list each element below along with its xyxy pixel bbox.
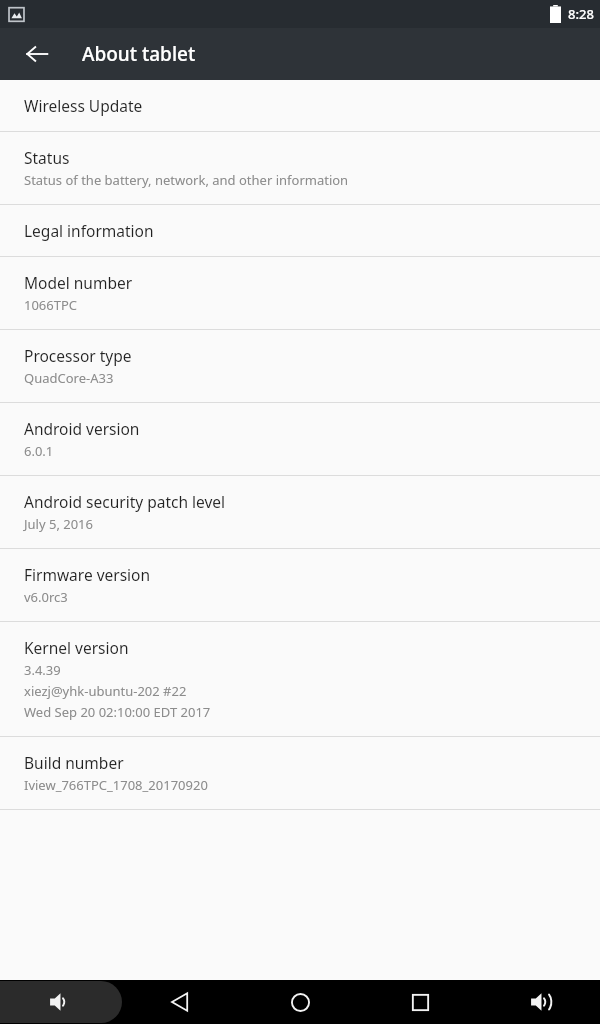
staticText: Build number: [24, 752, 124, 773]
staticText: Android version: [24, 418, 140, 439]
staticText: 6.0.1: [24, 442, 54, 460]
staticText: v6.0rc3: [24, 588, 68, 606]
staticText: Status of the battery, network, and othe…: [24, 171, 349, 189]
staticText: Kernel version: [24, 637, 129, 658]
button[interactable]: Android version: [0, 403, 600, 475]
staticText: Wireless Update: [24, 95, 143, 116]
staticText: Wed Sep 20 02:10:00 EDT 2017: [24, 703, 211, 721]
staticText: xiezj@yhk-ubuntu-202 #22: [24, 682, 187, 700]
staticText: Legal information: [24, 220, 154, 241]
button[interactable]: Volume up: [518, 980, 566, 1024]
button[interactable]: Kernel version: [0, 622, 600, 736]
staticText: 3.4.39: [24, 661, 61, 679]
staticText: 8:28: [568, 5, 594, 23]
button[interactable]: Status: [0, 132, 600, 204]
button[interactable]: Home: [276, 980, 324, 1024]
staticText: About tablet: [82, 41, 196, 67]
staticText: 1066TPC: [24, 296, 78, 314]
button[interactable]: Android security patch level: [0, 476, 600, 548]
button[interactable]: Build number: [0, 737, 600, 809]
button[interactable]: Volume down: [0, 981, 122, 1023]
button[interactable]: Legal information: [0, 205, 600, 256]
button[interactable]: Firmware version: [0, 549, 600, 621]
button[interactable]: Model number: [0, 257, 600, 329]
staticText: Android security patch level: [24, 491, 226, 512]
staticText: July 5, 2016: [24, 515, 93, 533]
button[interactable]: Back: [156, 980, 204, 1024]
button[interactable]: Wireless Update: [0, 80, 600, 131]
staticText: Model number: [24, 272, 133, 293]
button[interactable]: Recent apps: [396, 980, 444, 1024]
button[interactable]: Processor type: [0, 330, 600, 402]
button[interactable]: Back: [13, 30, 61, 78]
staticText: Iview_766TPC_1708_20170920: [24, 776, 208, 794]
staticText: Processor type: [24, 345, 132, 366]
staticText: Status: [24, 147, 70, 168]
staticText: Firmware version: [24, 564, 151, 585]
staticText: QuadCore-A33: [24, 369, 114, 387]
